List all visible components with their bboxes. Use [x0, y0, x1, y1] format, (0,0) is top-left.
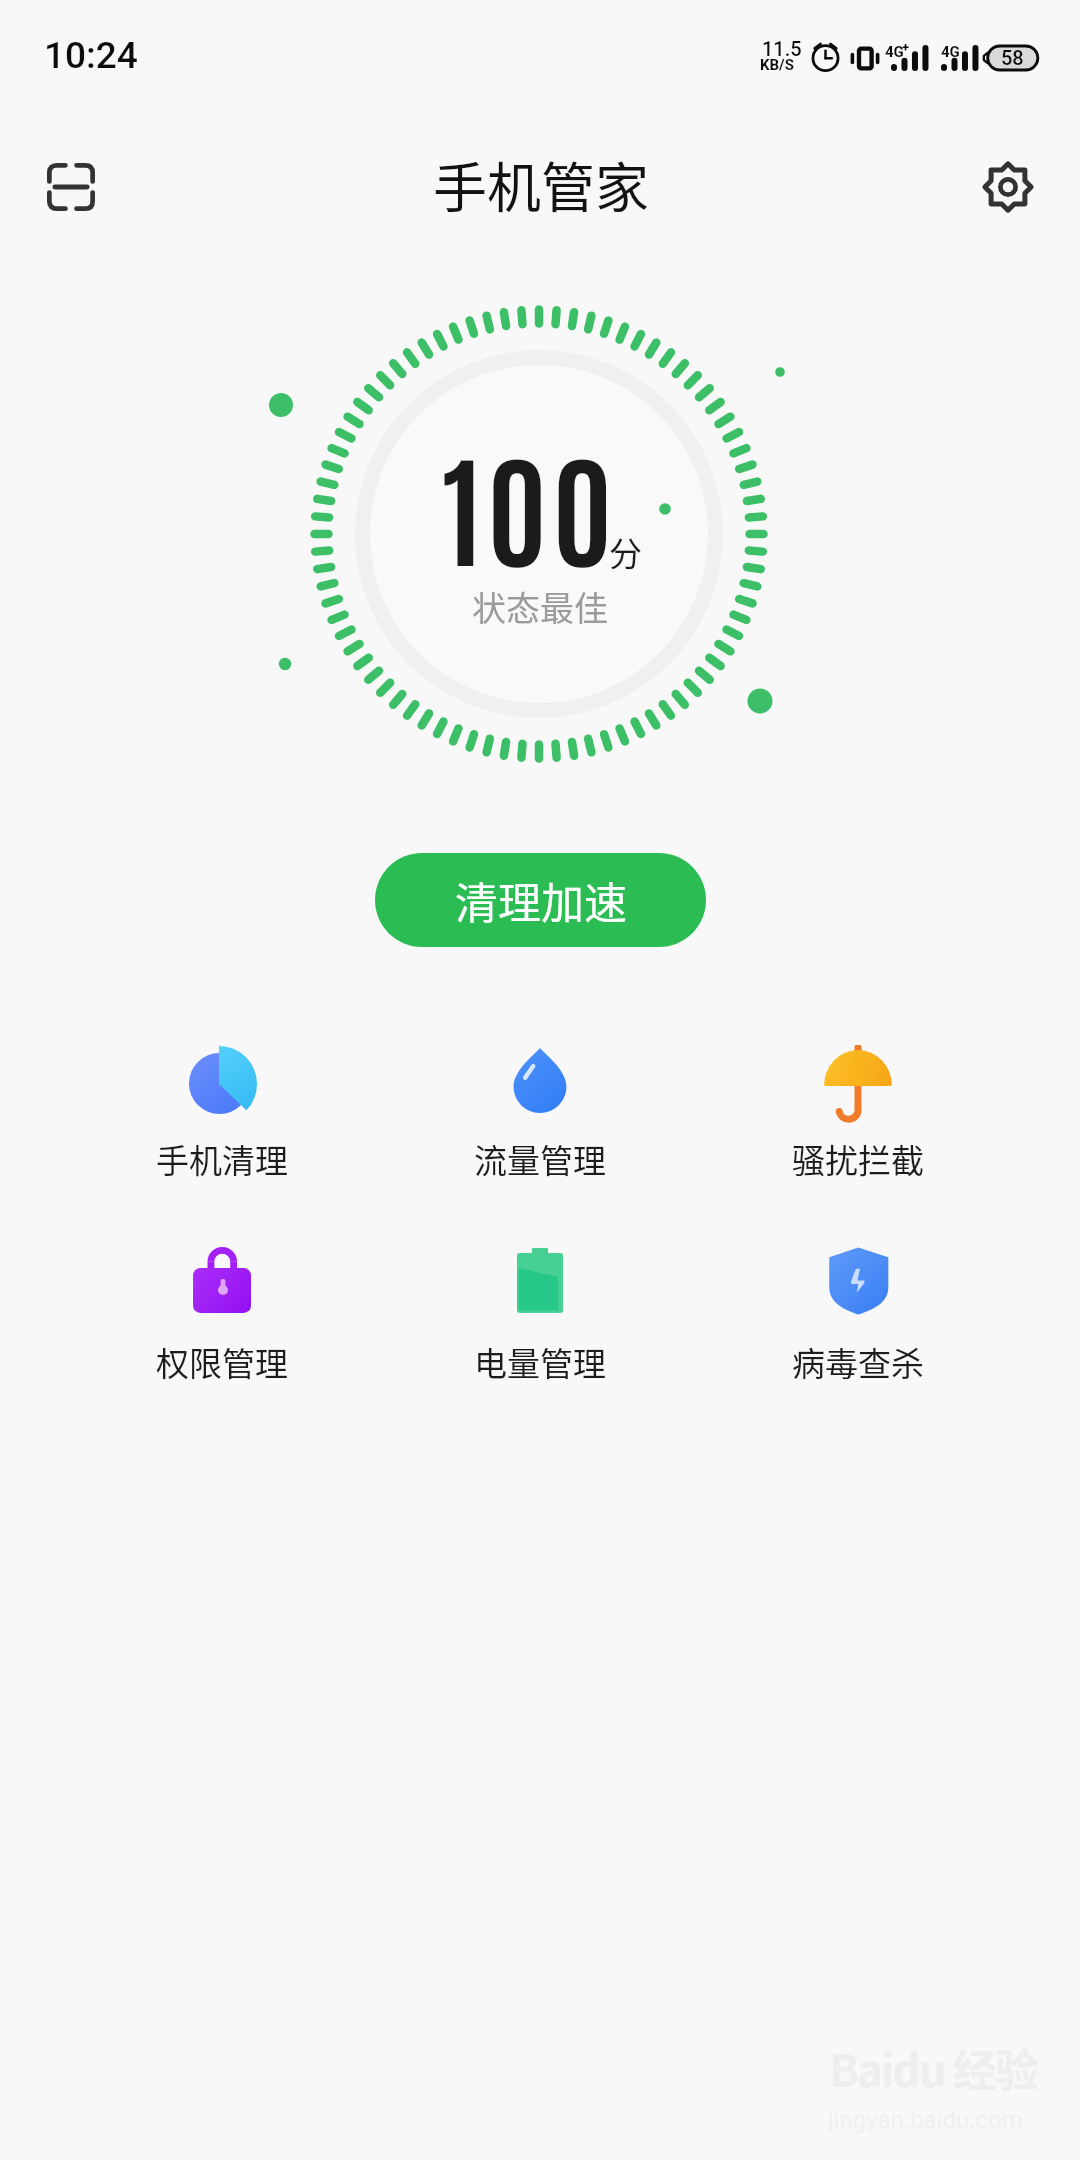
staticText: 状态最佳	[472, 582, 608, 631]
button[interactable]: 手机清理	[63, 1035, 381, 1183]
staticText: 手机管家	[433, 145, 649, 223]
staticText: +	[902, 40, 910, 55]
staticText: 电量管理	[474, 1338, 606, 1386]
staticText: 清理加速	[455, 869, 627, 931]
button[interactable]: 权限管理	[63, 1238, 381, 1386]
staticText: 权限管理	[156, 1338, 288, 1386]
staticText: 病毒查杀	[792, 1338, 924, 1386]
staticText: KB/S	[760, 56, 794, 74]
button[interactable]: 病毒查杀	[699, 1238, 1017, 1386]
staticText: Baidu 经验	[829, 2036, 1037, 2100]
button[interactable]: 流量管理	[381, 1035, 699, 1183]
staticText: 分	[609, 528, 642, 576]
staticText: 10:24	[44, 34, 138, 77]
button[interactable]: 电量管理	[381, 1238, 699, 1386]
button[interactable]: Settings	[964, 143, 1052, 231]
staticText: 流量管理	[474, 1135, 606, 1183]
staticText: 骚扰拦截	[792, 1135, 924, 1183]
button[interactable]: Scan QR code	[27, 143, 115, 231]
staticText: 100	[442, 425, 618, 583]
staticText: jingyan.baidu.com	[828, 2106, 1023, 2134]
staticText: 4G	[941, 43, 960, 61]
staticText: 58	[1001, 46, 1024, 69]
staticText: 11.5	[762, 37, 802, 60]
staticText: 手机清理	[156, 1135, 288, 1183]
staticText: 4G	[885, 43, 904, 61]
button[interactable]: 骚扰拦截	[699, 1035, 1017, 1183]
button[interactable]: 清理加速	[375, 853, 706, 947]
